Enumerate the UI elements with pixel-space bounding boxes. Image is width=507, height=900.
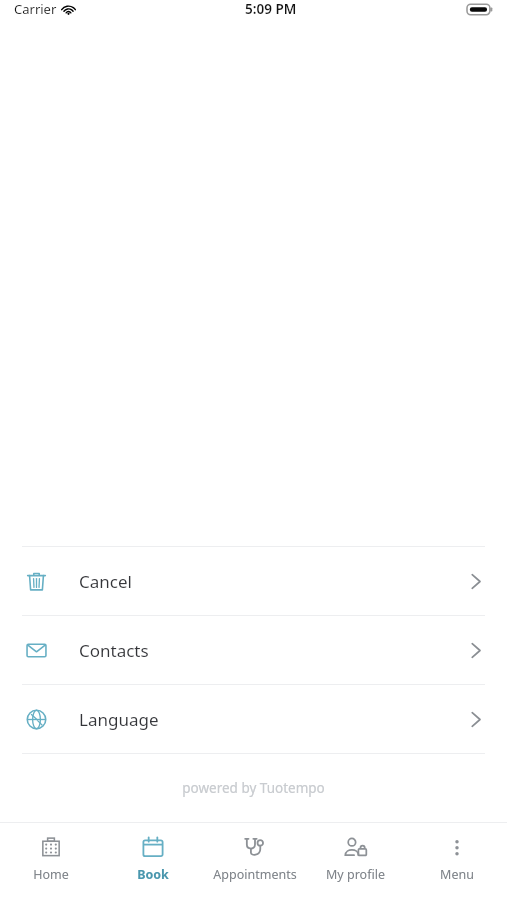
button[interactable]: Home [0,823,102,900]
button[interactable]: Book [102,823,204,900]
staticText: Carrier [14,0,57,18]
staticText: Contacts [79,639,149,662]
button[interactable]: Appointments [204,823,305,900]
button[interactable]: Contacts [0,616,507,684]
staticText: Home [33,866,69,883]
button[interactable]: Menu [406,823,507,900]
button[interactable]: My profile [305,823,406,900]
staticText: 5:09 PM [245,0,297,18]
staticText: Menu [440,866,474,883]
button[interactable]: Language [0,685,507,753]
staticText: Cancel [79,570,132,593]
staticText: My profile [326,866,385,883]
button[interactable]: Cancel [0,547,507,615]
staticText: powered by Tuotempo [182,779,325,797]
staticText: Language [79,708,159,731]
staticText: Book [137,866,169,883]
staticText: Appointments [213,866,297,883]
